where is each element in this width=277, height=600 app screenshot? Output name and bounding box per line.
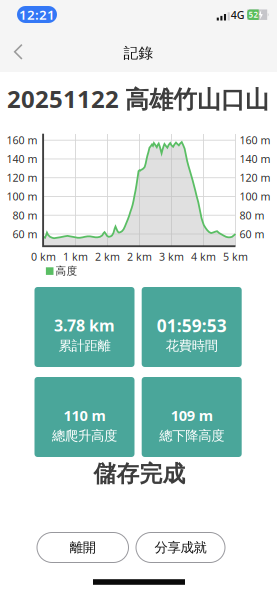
staticText: 60 m (239, 227, 264, 241)
staticText: 3.78 km (54, 315, 115, 336)
staticText: 2 km (127, 249, 152, 264)
staticText: 80 m (12, 208, 37, 222)
staticText: 分享成就 (154, 539, 206, 556)
staticText: 4 km (191, 249, 216, 264)
staticText: 總下降高度 (159, 427, 224, 444)
staticText: 160 m (239, 133, 270, 147)
staticText: 140 m (239, 152, 270, 166)
staticText: 4G (231, 8, 245, 22)
button[interactable]: 分享成就 (136, 532, 225, 562)
button[interactable]: Back (14, 44, 24, 60)
staticText: 100 m (239, 189, 270, 204)
staticText: 高度 (55, 264, 77, 277)
staticText: 5 km (223, 249, 248, 264)
staticText: 花費時間 (166, 337, 218, 354)
staticText: 2 km (95, 249, 120, 264)
staticText: 01:59:53 (157, 314, 227, 337)
staticText: 80 m (239, 208, 264, 222)
staticText: 110 m (63, 406, 105, 425)
staticText: 160 m (6, 133, 37, 147)
button[interactable]: 離開 (37, 532, 128, 562)
staticText: 記錄 (123, 44, 153, 62)
staticText: 0 km (31, 249, 56, 264)
staticText: 儲存完成 (93, 460, 185, 488)
staticText: 3 km (159, 249, 184, 264)
staticText: 100 m (6, 189, 37, 204)
staticText: 累計距離 (58, 337, 110, 354)
staticText: 120 m (239, 171, 270, 185)
staticText: 1 km (63, 249, 88, 264)
staticText: 離開 (70, 539, 96, 556)
staticText: 120 m (6, 171, 37, 185)
button[interactable]: Time — tap to return (17, 6, 57, 23)
staticText: 52 (248, 9, 258, 20)
staticText: 總爬升高度 (52, 427, 117, 444)
staticText: 60 m (12, 227, 37, 241)
staticText: 140 m (6, 152, 37, 166)
staticText: 20251122 高雄竹山口山 (7, 83, 269, 115)
staticText: 12:21 (19, 6, 55, 23)
staticText: 109 m (171, 406, 213, 425)
